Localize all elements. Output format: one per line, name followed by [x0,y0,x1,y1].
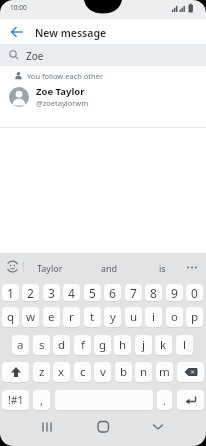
button[interactable]: u [125,307,142,327]
staticText: h [119,337,127,353]
staticText: g [99,337,107,353]
staticText: 2 [27,285,34,301]
button[interactable]: 3 [43,284,60,301]
button[interactable]: 5 [84,284,101,301]
staticText: n [140,364,148,380]
button[interactable]: g [94,335,111,355]
button[interactable]: l [176,335,193,355]
button[interactable] [93,417,113,437]
staticText: @zoetaylorwm [36,98,89,108]
button[interactable]: v [94,362,111,382]
button[interactable]: Zoe Taylor [0,84,206,112]
staticText: 5 [89,285,96,301]
staticText: New message [35,26,107,40]
button[interactable]: 2 [22,284,39,301]
button[interactable] [177,362,204,382]
button[interactable]: q [2,307,19,327]
button[interactable]: 0 [186,284,203,301]
staticText: f [81,337,85,353]
staticText: b [120,364,128,380]
staticText: is [159,262,166,274]
button[interactable]: j [135,335,152,355]
button[interactable]: 8 [145,284,162,301]
staticText: u [130,309,138,325]
button[interactable]: 4 [63,284,80,301]
button[interactable] [4,258,21,275]
button[interactable]: . [157,390,172,410]
button[interactable]: b [115,362,132,382]
button[interactable]: m [156,362,173,382]
staticText: . [163,393,166,408]
staticText: 7 [130,285,137,301]
staticText: You follow each other [27,71,104,81]
staticText: !#1 [8,393,24,407]
staticText: m [159,364,170,380]
button[interactable] [148,417,168,437]
staticText: 10:00 [10,3,27,12]
button[interactable]: c [74,362,91,382]
staticText: and [101,262,118,274]
button[interactable]: , [33,390,50,410]
button[interactable]: Taylor [20,260,80,276]
staticText: o [171,309,178,325]
button[interactable]: r [63,307,80,327]
staticText: , [40,393,43,408]
staticText: v [100,364,106,380]
staticText: w [26,309,36,325]
button[interactable]: x [53,362,70,382]
button[interactable]: t [84,307,101,327]
staticText: t [90,309,95,325]
staticText: i [152,309,155,325]
staticText: x [58,364,65,380]
staticText: y [110,309,116,325]
button[interactable]: z [33,362,50,382]
staticText: r [69,309,74,325]
staticText: q [7,309,15,325]
button[interactable] [2,362,29,382]
staticText: c [80,364,86,380]
staticText: e [48,309,55,325]
staticText: l [183,337,186,353]
button[interactable]: 7 [125,284,142,301]
button[interactable]: h [114,335,131,355]
button[interactable]: e [43,307,60,327]
staticText: 4 [68,285,75,301]
button[interactable]: and [79,260,139,276]
button[interactable]: a [12,335,29,355]
staticText: Zoe Taylor [36,85,85,98]
staticText: z [39,364,45,380]
button[interactable]: !#1 [2,390,29,410]
staticText: d [58,337,66,353]
button[interactable]: n [135,362,152,382]
staticText: 9 [171,285,178,301]
staticText: j [142,337,145,353]
staticText: p [191,309,199,325]
button[interactable]: Zoe [0,44,206,66]
button[interactable]: k [155,335,172,355]
button[interactable]: 9 [166,284,183,301]
button[interactable]: is [132,260,192,276]
button[interactable]: p [186,307,203,327]
button[interactable]: w [22,307,39,327]
staticText: k [160,337,167,353]
staticText: 6 [109,285,116,301]
button[interactable]: d [53,335,70,355]
staticText: 1 [7,285,14,301]
staticText: s [39,337,45,353]
button[interactable]: s [33,335,50,355]
button[interactable] [177,390,204,410]
staticText: 8 [150,285,157,301]
staticText: 3 [48,285,55,301]
button[interactable]: i [145,307,162,327]
button[interactable]: 6 [104,284,121,301]
staticText: Zoe [26,49,44,63]
staticText: 0 [191,285,198,301]
button[interactable] [5,24,35,42]
button[interactable]: f [74,335,91,355]
button[interactable]: 1 [2,284,19,301]
button[interactable]: o [166,307,183,327]
staticText: Taylor [37,262,63,274]
button[interactable]: y [104,307,121,327]
button[interactable] [37,417,57,437]
